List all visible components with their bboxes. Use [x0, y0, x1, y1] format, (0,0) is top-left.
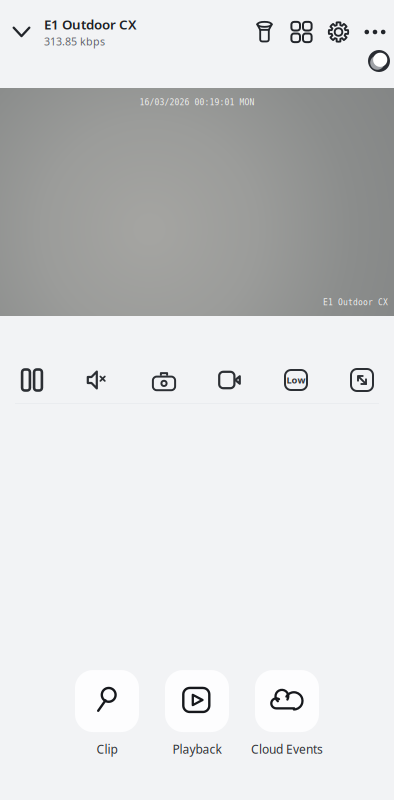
- staticText: 16/03/2026 00:19:01 MON: [139, 98, 254, 107]
- button[interactable]: Record: [197, 358, 263, 402]
- button[interactable]: Settings: [320, 14, 357, 50]
- button[interactable]: Clip: [75, 670, 139, 757]
- staticText: Clip: [96, 741, 117, 757]
- button[interactable]: Collapse: [0, 14, 44, 50]
- button[interactable]: More: [357, 14, 393, 50]
- staticText: Playback: [172, 741, 221, 757]
- button[interactable]: Stream quality Low: [263, 358, 329, 402]
- button[interactable]: Pause: [0, 358, 65, 402]
- button[interactable]: Split view: [283, 14, 320, 50]
- staticText: Low: [286, 374, 305, 386]
- button[interactable]: Night vision: [368, 50, 390, 72]
- staticText: E1 Outdoor CX: [323, 298, 388, 307]
- button[interactable]: Snapshot: [131, 358, 197, 402]
- button[interactable]: Cloud Events: [255, 670, 319, 757]
- staticText: Cloud Events: [251, 741, 323, 757]
- staticText: E1 Outdoor CX: [44, 16, 137, 33]
- button[interactable]: Full screen: [329, 358, 394, 402]
- button[interactable]: Unmute: [65, 358, 131, 402]
- staticText: 313.85 kbps: [44, 34, 105, 48]
- button[interactable]: Playback: [165, 670, 229, 757]
- button[interactable]: Spotlight: [246, 14, 283, 50]
